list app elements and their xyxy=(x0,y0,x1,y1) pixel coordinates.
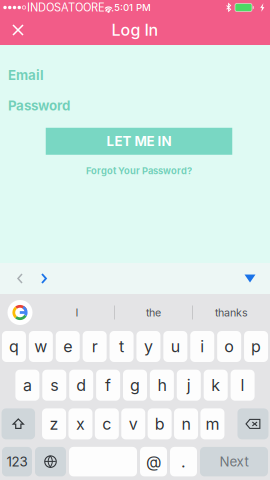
staticText: u xyxy=(171,337,180,356)
button[interactable]: Next field xyxy=(32,263,56,293)
staticText: @ xyxy=(146,452,161,471)
button[interactable]: Shift xyxy=(2,408,35,439)
staticText: z xyxy=(50,414,59,434)
button[interactable]: x xyxy=(68,408,92,439)
staticText: d xyxy=(76,375,86,395)
staticText: b xyxy=(155,414,165,434)
button[interactable]: w xyxy=(29,331,53,362)
button[interactable]: Backspace xyxy=(237,408,268,439)
button[interactable]: Google xyxy=(0,297,40,327)
staticText: I xyxy=(75,306,78,319)
button[interactable]: @ xyxy=(140,447,167,476)
button[interactable]: Close xyxy=(0,15,36,45)
button[interactable]: n xyxy=(174,408,198,439)
staticText: k xyxy=(211,375,220,395)
staticText: 5:01 PM xyxy=(114,2,151,13)
staticText: y xyxy=(144,337,153,356)
button[interactable]: p xyxy=(244,331,268,362)
staticText: r xyxy=(92,337,98,356)
button[interactable]: g xyxy=(123,370,147,401)
staticText: i xyxy=(200,337,204,356)
staticText: x xyxy=(76,414,85,434)
staticText: thanks xyxy=(215,306,248,319)
button[interactable]: d xyxy=(69,370,93,401)
button[interactable]: l xyxy=(231,370,255,401)
staticText: t xyxy=(119,337,124,356)
button[interactable]: b xyxy=(148,408,172,439)
button[interactable]: c xyxy=(95,408,119,439)
button[interactable]: Previous field xyxy=(8,263,32,293)
button[interactable]: u xyxy=(163,331,187,362)
staticText: n xyxy=(182,414,191,434)
staticText: q xyxy=(9,337,19,356)
staticText: f xyxy=(105,375,111,395)
button[interactable]: Next xyxy=(200,447,268,476)
staticText: o xyxy=(224,337,234,356)
button[interactable]: t xyxy=(109,331,133,362)
button[interactable]: e xyxy=(56,331,80,362)
staticText: Password xyxy=(8,98,70,114)
staticText: e xyxy=(63,337,72,356)
staticText: v xyxy=(129,414,138,434)
button[interactable]: k xyxy=(204,370,228,401)
staticText: Forgot Your Password? xyxy=(86,165,192,176)
staticText: the xyxy=(146,306,161,319)
staticText: p xyxy=(251,337,261,356)
staticText: c xyxy=(102,414,111,434)
staticText: w xyxy=(34,337,47,356)
button[interactable]: j xyxy=(177,370,201,401)
staticText: m xyxy=(205,414,219,434)
button[interactable]: LET ME IN xyxy=(46,128,232,155)
button[interactable]: z xyxy=(42,408,66,439)
staticText: s xyxy=(50,375,58,395)
button[interactable]: h xyxy=(150,370,174,401)
button[interactable]: Dismiss keyboard xyxy=(238,263,262,293)
button[interactable]: f xyxy=(96,370,120,401)
button[interactable]: s xyxy=(42,370,66,401)
button[interactable]: Switch keyboard xyxy=(35,447,66,476)
staticText: j xyxy=(187,375,191,395)
button[interactable]: Forgot Your Password? xyxy=(86,164,192,178)
button[interactable]: r xyxy=(83,331,107,362)
button[interactable]: the xyxy=(115,297,192,327)
staticText: INDOSATOORE... xyxy=(27,1,114,14)
button[interactable]: o xyxy=(217,331,241,362)
button[interactable]: q xyxy=(2,331,26,362)
button[interactable]: . xyxy=(170,447,197,476)
staticText: Email xyxy=(8,67,44,83)
button[interactable]: 123 xyxy=(2,447,32,476)
button[interactable]: m xyxy=(200,408,224,439)
staticText: g xyxy=(130,375,140,395)
button[interactable]: v xyxy=(121,408,145,439)
button[interactable]: thanks xyxy=(193,297,270,327)
button[interactable]: I xyxy=(40,297,114,327)
button[interactable]: a xyxy=(15,370,39,401)
button[interactable]: y xyxy=(136,331,160,362)
staticText: . xyxy=(181,452,186,471)
staticText: a xyxy=(23,375,32,395)
staticText: Log In xyxy=(111,20,158,40)
staticText: LET ME IN xyxy=(106,133,171,149)
staticText: l xyxy=(241,375,245,395)
staticText: 123 xyxy=(6,454,27,470)
staticText: Next xyxy=(219,454,248,470)
button[interactable]: i xyxy=(190,331,214,362)
staticText: h xyxy=(157,375,166,395)
